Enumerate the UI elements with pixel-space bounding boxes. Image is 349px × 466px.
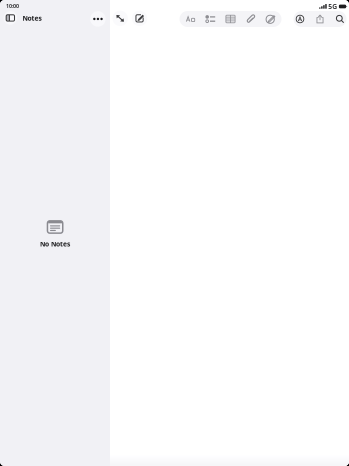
button[interactable]: Full screen: [112, 11, 128, 26]
button[interactable]: Share: [310, 11, 330, 26]
staticText: 5G: [328, 2, 337, 11]
button[interactable]: Writing tools: [290, 11, 310, 26]
button[interactable]: Attach file: [240, 11, 260, 26]
staticText: 10:00: [6, 2, 19, 9]
staticText: Notes: [23, 14, 42, 23]
button[interactable]: Search: [330, 11, 349, 26]
button[interactable]: Checklist: [200, 11, 220, 26]
button[interactable]: New note: [132, 11, 147, 26]
staticText: No Notes: [40, 240, 70, 248]
button[interactable]: Markup: [260, 11, 280, 26]
button[interactable]: More: [90, 11, 106, 27]
button[interactable]: Show sidebar: [4, 11, 17, 25]
button[interactable]: Table: [220, 11, 240, 26]
button[interactable]: Text formatting: [180, 11, 200, 26]
